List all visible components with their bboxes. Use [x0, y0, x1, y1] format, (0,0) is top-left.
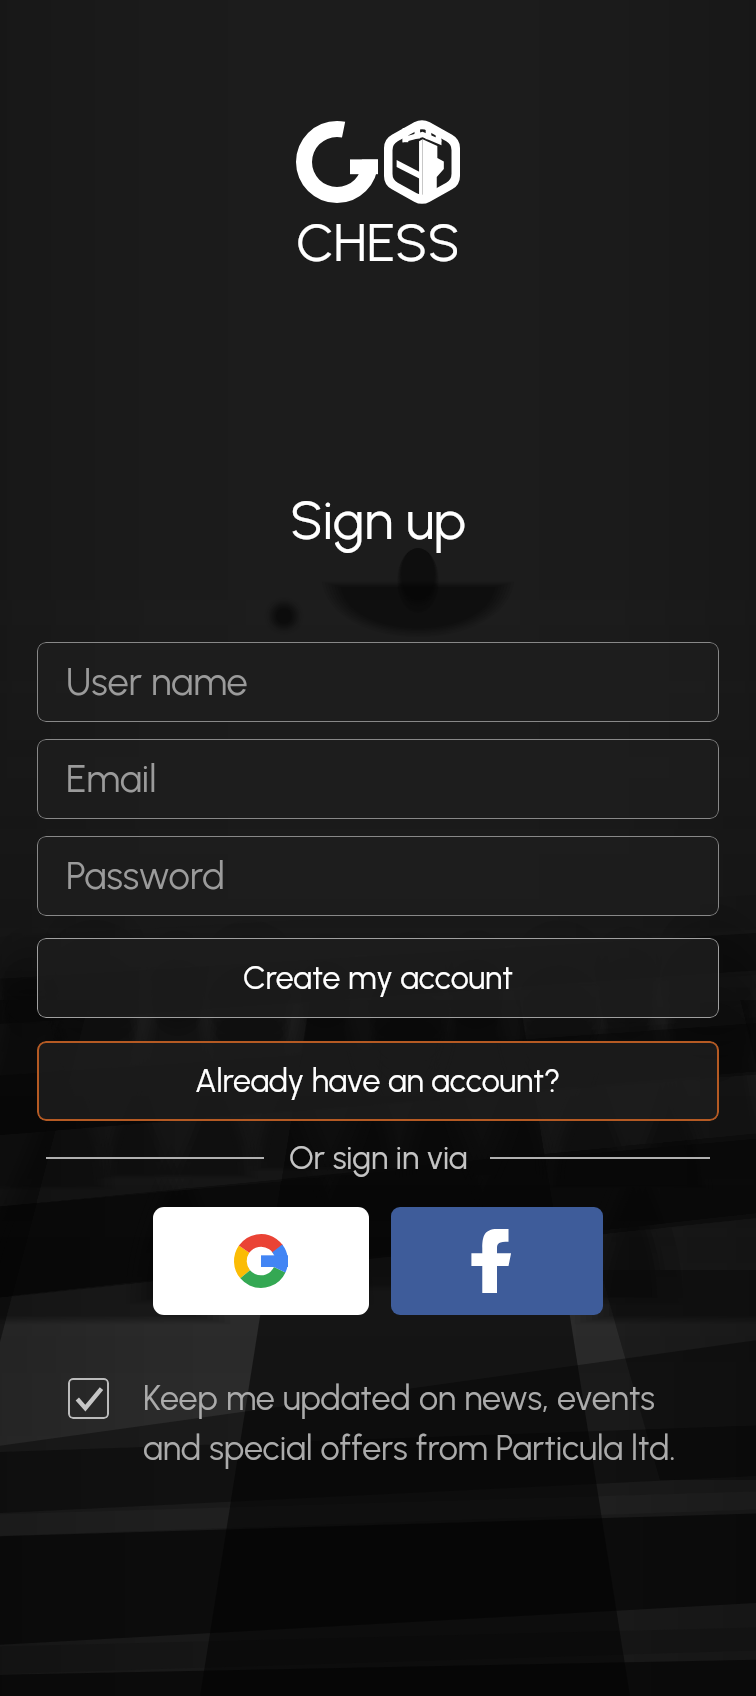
- button[interactable]: User name: [37, 642, 719, 722]
- staticText: Email: [66, 756, 157, 802]
- staticText: Password: [66, 853, 225, 899]
- staticText: Create my account: [243, 959, 514, 997]
- button[interactable]: Keep me updated checkbox: [68, 1378, 109, 1419]
- staticText: Or sign in via: [289, 1139, 468, 1177]
- button[interactable]: Create my account: [37, 938, 719, 1018]
- button[interactable]: Already have an account?: [37, 1041, 719, 1121]
- staticText: CHESS: [278, 211, 478, 275]
- button[interactable]: Sign in with Facebook: [391, 1207, 603, 1315]
- staticText: User name: [66, 659, 248, 705]
- button[interactable]: Email: [37, 739, 719, 819]
- staticText: Keep me updated on news, events and spec…: [143, 1378, 676, 1468]
- staticText: Sign up: [0, 488, 756, 553]
- button[interactable]: Password: [37, 836, 719, 916]
- button[interactable]: Sign in with Google: [153, 1207, 369, 1315]
- staticText: Already have an account?: [195, 1062, 561, 1100]
